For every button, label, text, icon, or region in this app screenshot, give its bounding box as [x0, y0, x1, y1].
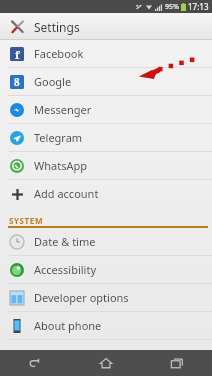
- staticText: Telegram: [34, 130, 83, 145]
- staticText: Facebook: [34, 46, 84, 61]
- button[interactable]: Developer options: [0, 284, 212, 311]
- button[interactable]: Messenger: [0, 96, 212, 123]
- button[interactable]: WhatsApp: [0, 152, 212, 179]
- staticText: About phone: [34, 318, 102, 333]
- staticText: Messenger: [34, 102, 92, 117]
- staticText: 17:13: [188, 1, 209, 12]
- button[interactable]: Add account: [0, 180, 212, 207]
- staticText: Google: [34, 74, 72, 89]
- button[interactable]: About phone: [0, 312, 212, 339]
- staticText: Settings: [34, 19, 80, 35]
- button[interactable]: Back: [0, 350, 70, 376]
- button[interactable]: 8: [0, 68, 212, 95]
- staticText: 95%: [165, 2, 179, 12]
- staticText: WhatsApp: [34, 158, 87, 173]
- staticText: 8: [14, 75, 20, 89]
- button[interactable]: Date & time: [0, 228, 212, 255]
- staticText: Add account: [34, 186, 99, 201]
- staticText: Developer options: [34, 290, 129, 305]
- button[interactable]: f: [0, 40, 212, 67]
- button[interactable]: Accessibility: [0, 256, 212, 283]
- button[interactable]: Recents: [141, 350, 212, 376]
- staticText: Date & time: [34, 234, 96, 249]
- button[interactable]: Telegram: [0, 124, 212, 151]
- staticText: f: [15, 47, 20, 61]
- staticText: SYSTEM: [9, 215, 44, 226]
- staticText: Accessibility: [34, 262, 97, 277]
- button[interactable]: Home: [70, 350, 141, 376]
